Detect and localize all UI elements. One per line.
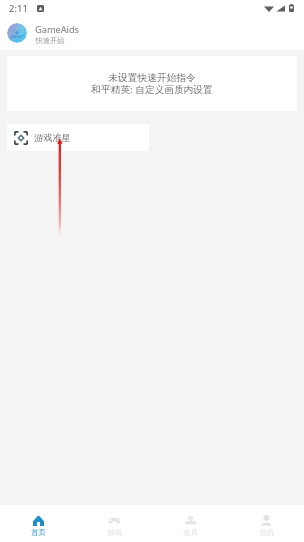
staticText: 游戏 — [107, 528, 122, 537]
button[interactable]: Games — [76, 505, 152, 542]
staticText: 游戏准星 — [34, 132, 71, 144]
staticText: GameAids — [35, 23, 79, 36]
button[interactable]: Home — [0, 505, 76, 542]
staticText: 我的 — [259, 528, 274, 537]
staticText: 快速开始 — [35, 36, 65, 45]
staticText: 2:11 — [9, 2, 28, 15]
staticText: 未设置快速开始指令 和平精英: 自定义画质内设置 — [91, 72, 213, 96]
staticText: 道具 — [183, 528, 198, 537]
button[interactable]: GameAids — [0, 16, 304, 50]
staticText: 首页 — [31, 528, 46, 537]
button[interactable]: 游戏准星 — [7, 124, 149, 151]
button[interactable]: Profile — [228, 505, 304, 542]
button[interactable]: 未设置快速开始指令 和平精英: 自定义画质内设置 — [7, 56, 297, 111]
button[interactable]: Items — [152, 505, 228, 542]
